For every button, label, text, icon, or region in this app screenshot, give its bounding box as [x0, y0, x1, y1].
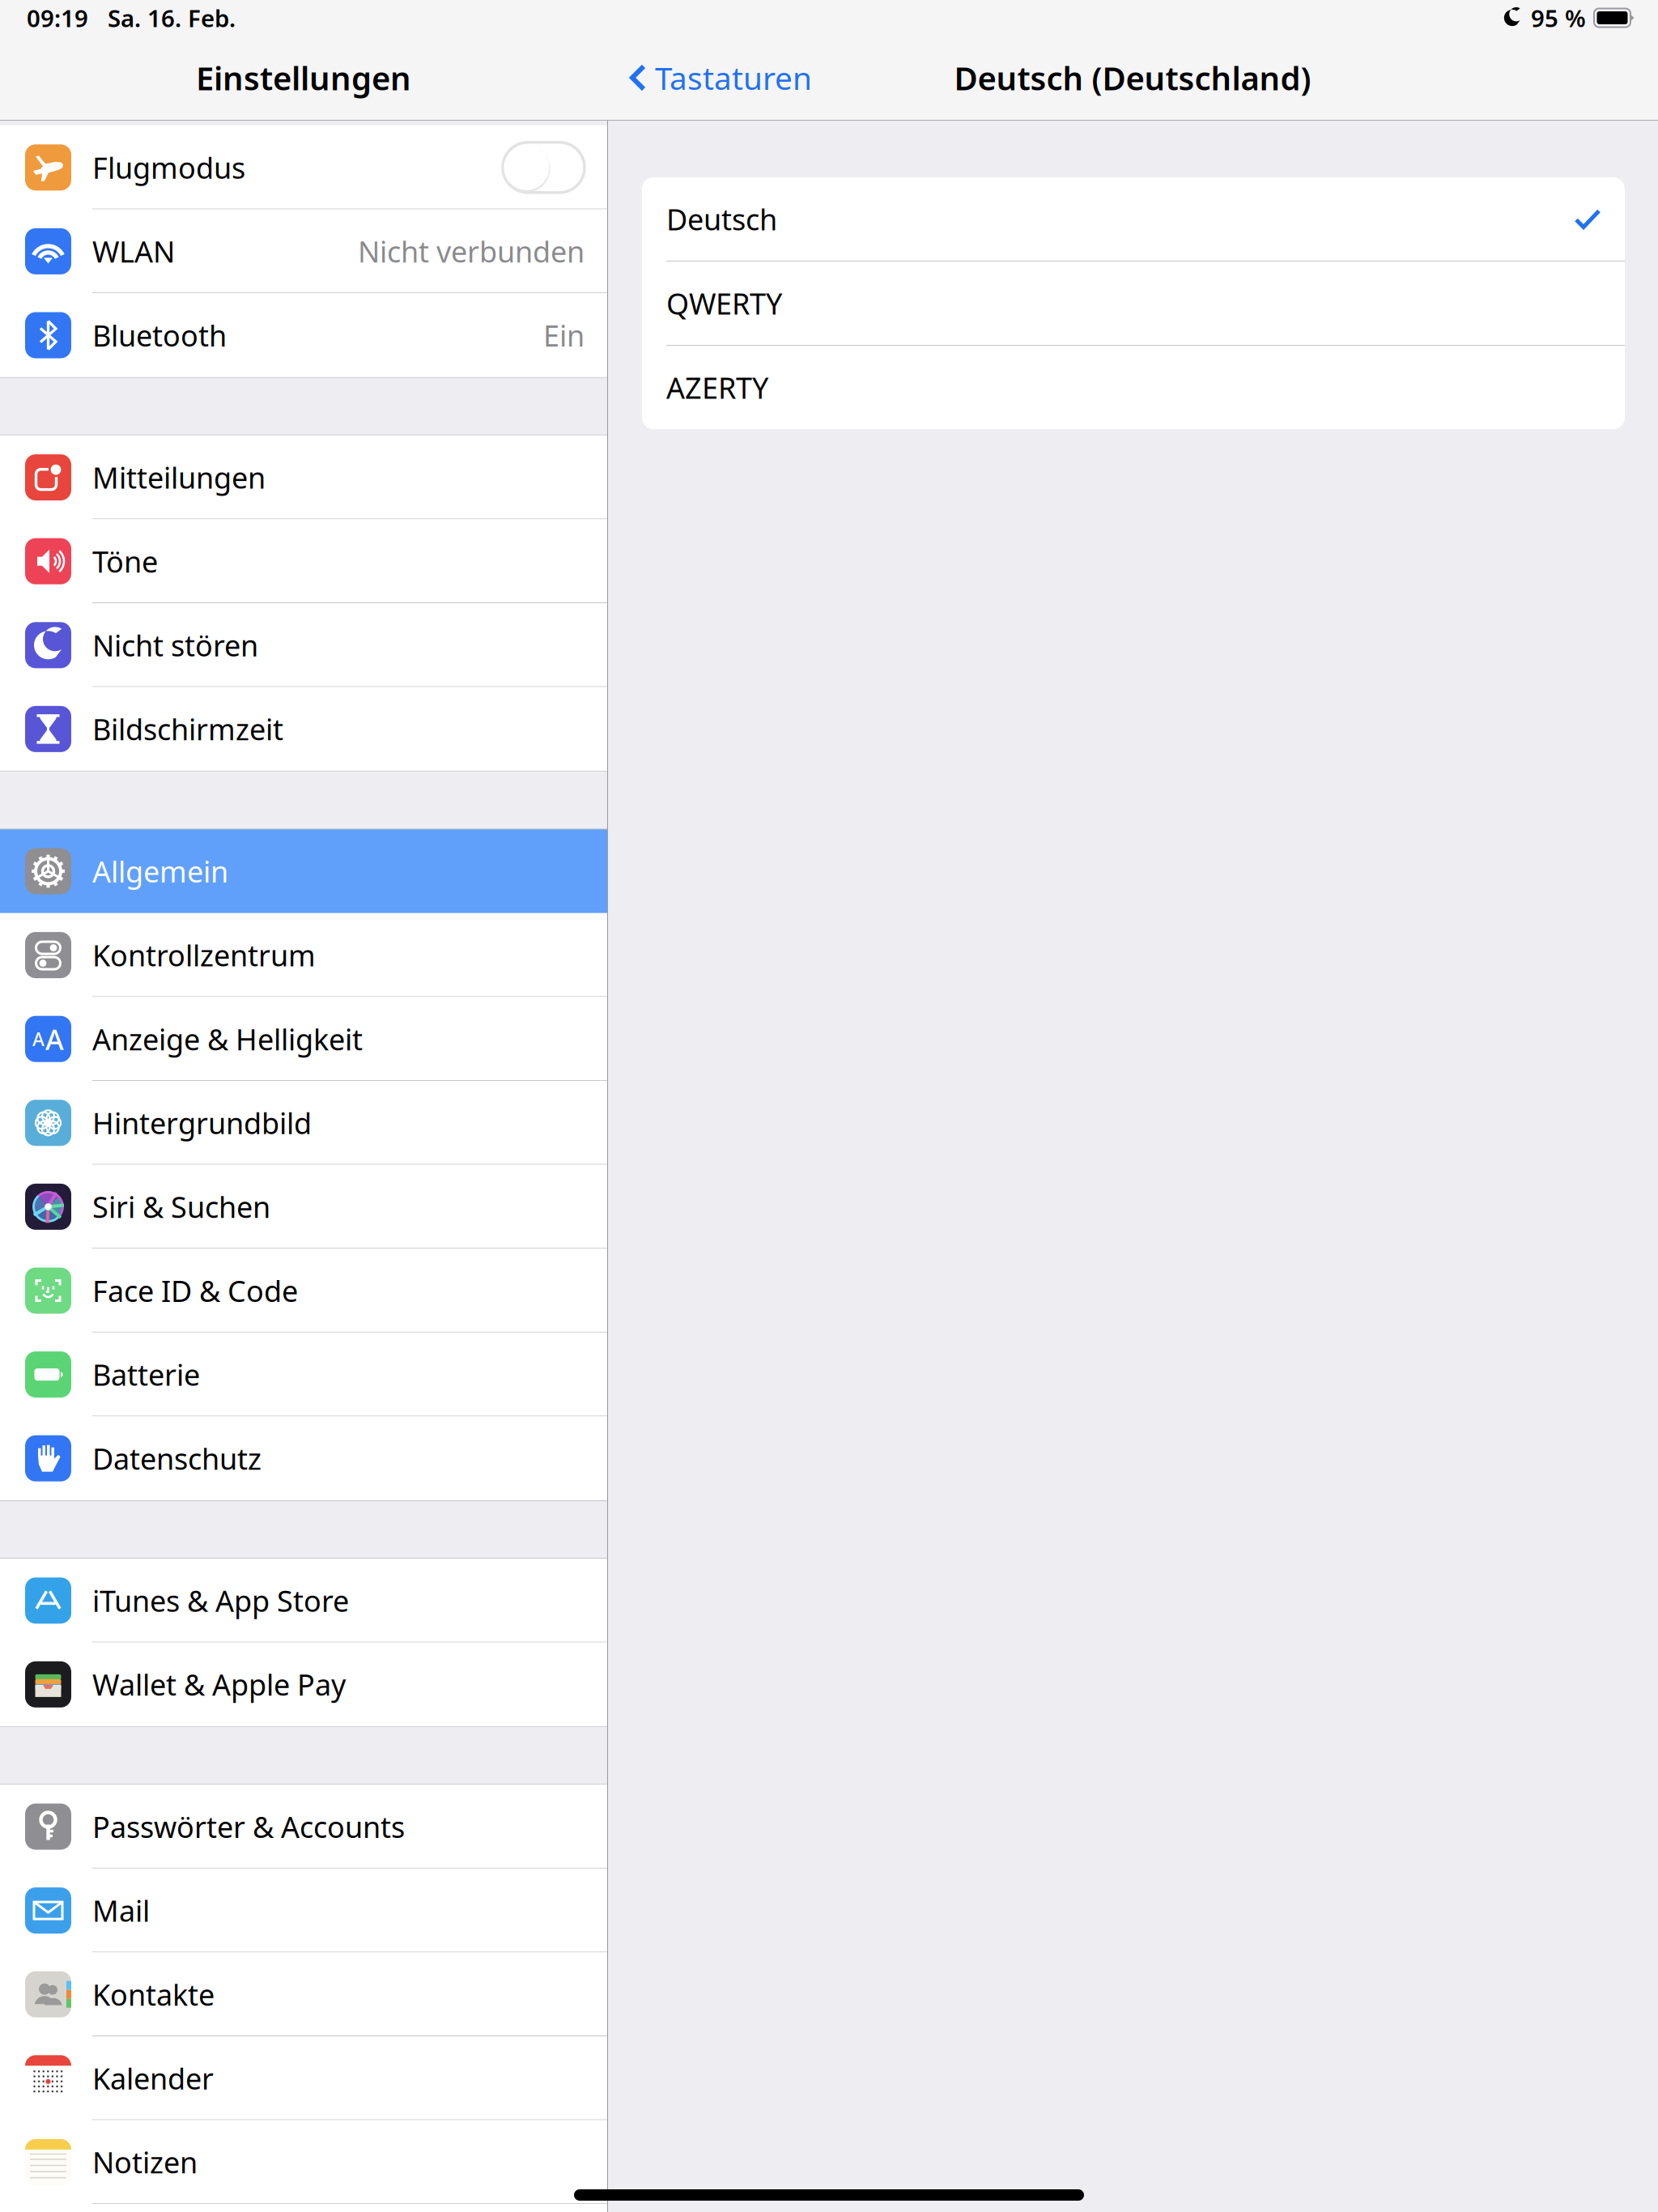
- button[interactable]: Datenschutz: [0, 1416, 607, 1500]
- staticText: Ein: [543, 316, 585, 355]
- button[interactable]: Nicht stören: [0, 603, 607, 687]
- staticText: Bluetooth: [92, 316, 227, 355]
- button[interactable]: Mail: [0, 1869, 607, 1952]
- button[interactable]: WLAN: [0, 209, 607, 293]
- staticText: Wallet & Apple Pay: [92, 1665, 346, 1704]
- staticText: 09:19: [27, 2, 88, 34]
- button[interactable]: Kontrollzentrum: [0, 913, 607, 997]
- staticText: Face ID & Code: [92, 1271, 298, 1310]
- button[interactable]: Hintergrundbild: [0, 1081, 607, 1165]
- staticText: Hintergrundbild: [92, 1103, 312, 1142]
- staticText: Notizen: [92, 2143, 198, 2181]
- button[interactable]: Face ID & Code: [0, 1249, 607, 1333]
- button[interactable]: QWERTY: [642, 262, 1625, 345]
- staticText: A: [32, 1027, 45, 1051]
- button[interactable]: Bildschirmzeit: [0, 687, 607, 771]
- button[interactable]: Flugmodus: [0, 125, 607, 209]
- staticText: AZERTY: [666, 368, 768, 407]
- button[interactable]: Tastaturen: [607, 36, 828, 120]
- staticText: Datenschutz: [92, 1439, 261, 1478]
- staticText: Sa. 16. Feb.: [108, 2, 236, 34]
- staticText: Kontrollzentrum: [92, 936, 316, 974]
- staticText: Kontakte: [92, 1975, 215, 2014]
- staticText: Passwörter & Accounts: [92, 1807, 405, 1846]
- staticText: Siri & Suchen: [92, 1187, 270, 1226]
- staticText: Flugmodus: [92, 148, 245, 187]
- staticText: Mail: [92, 1891, 150, 1930]
- button[interactable]: Deutsch: [642, 177, 1625, 261]
- button[interactable]: Allgemein: [0, 829, 607, 913]
- button[interactable]: Töne: [0, 519, 607, 603]
- button[interactable]: A: [0, 997, 607, 1081]
- button[interactable]: Passwörter & Accounts: [0, 1785, 607, 1869]
- staticText: Nicht verbunden: [358, 232, 585, 271]
- button[interactable]: iTunes & App Store: [0, 1559, 607, 1642]
- staticText: Allgemein: [92, 852, 228, 891]
- staticText: Anzeige & Helligkeit: [92, 1020, 363, 1058]
- button[interactable]: Siri & Suchen: [0, 1165, 607, 1249]
- staticText: Batterie: [92, 1355, 200, 1394]
- staticText: Einstellungen: [196, 56, 411, 99]
- staticText: A: [45, 1020, 64, 1058]
- button[interactable]: AZERTY: [642, 346, 1625, 429]
- button[interactable]: Kalender: [0, 2036, 607, 2120]
- button[interactable]: Wallet & Apple Pay: [0, 1642, 607, 1726]
- staticText: Kalender: [92, 2059, 214, 2098]
- staticText: Deutsch: [666, 200, 777, 238]
- staticText: Mitteilungen: [92, 458, 266, 497]
- button[interactable]: Bluetooth: [0, 293, 607, 377]
- staticText: QWERTY: [666, 284, 782, 323]
- button[interactable]: Batterie: [0, 1333, 607, 1416]
- staticText: iTunes & App Store: [92, 1581, 349, 1620]
- button[interactable]: Mitteilungen: [0, 435, 607, 519]
- button[interactable]: Notizen: [0, 2120, 607, 2204]
- staticText: Nicht stören: [92, 626, 258, 664]
- staticText: Tastaturen: [655, 57, 812, 98]
- staticText: WLAN: [92, 232, 175, 271]
- staticText: Deutsch (Deutschland): [954, 56, 1311, 99]
- staticText: Bildschirmzeit: [92, 710, 283, 748]
- button[interactable]: Kontakte: [0, 1952, 607, 2036]
- staticText: 95 %: [1531, 2, 1586, 34]
- staticText: Töne: [92, 542, 158, 581]
